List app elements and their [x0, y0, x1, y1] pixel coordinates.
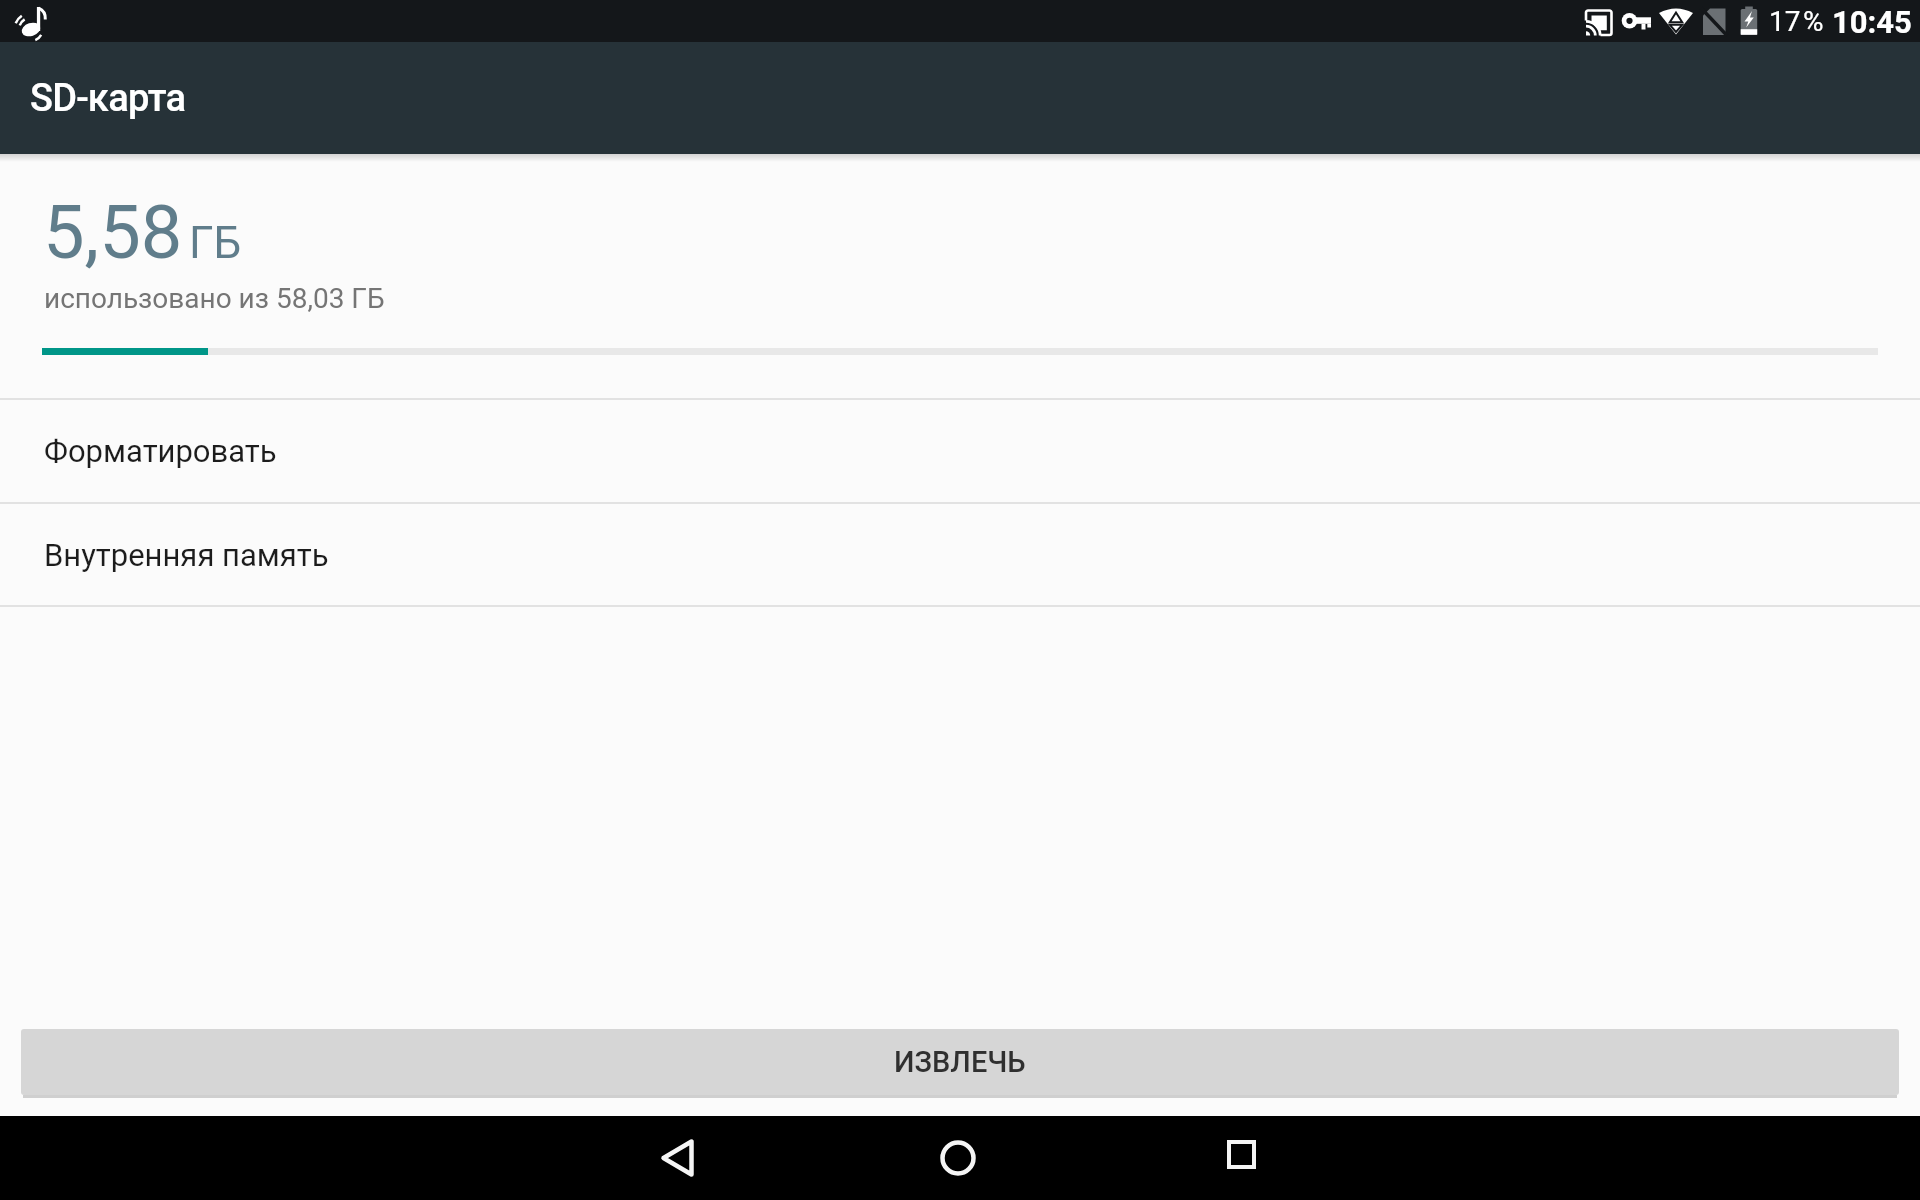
staticText: % [1803, 5, 1824, 38]
staticText: SD-карта [30, 76, 186, 121]
staticText: ГБ [189, 217, 242, 269]
staticText: ИЗВЛЕЧЬ [894, 1045, 1026, 1079]
button[interactable]: Форматировать [0, 400, 1920, 502]
button[interactable]: Внутренняя память [0, 504, 1920, 605]
button[interactable] [926, 1126, 990, 1190]
staticText: 10:45 [1832, 4, 1912, 40]
staticText: 5,58 [43, 189, 183, 276]
button[interactable] [645, 1126, 709, 1190]
button[interactable]: ИЗВЛЕЧЬ [21, 1029, 1899, 1095]
staticText: Форматировать [44, 433, 277, 469]
staticText: использовано из 58,03 ГБ [44, 282, 385, 315]
staticText: 17 [1769, 5, 1801, 38]
button[interactable] [1209, 1126, 1273, 1190]
staticText: Внутренняя память [44, 537, 329, 573]
